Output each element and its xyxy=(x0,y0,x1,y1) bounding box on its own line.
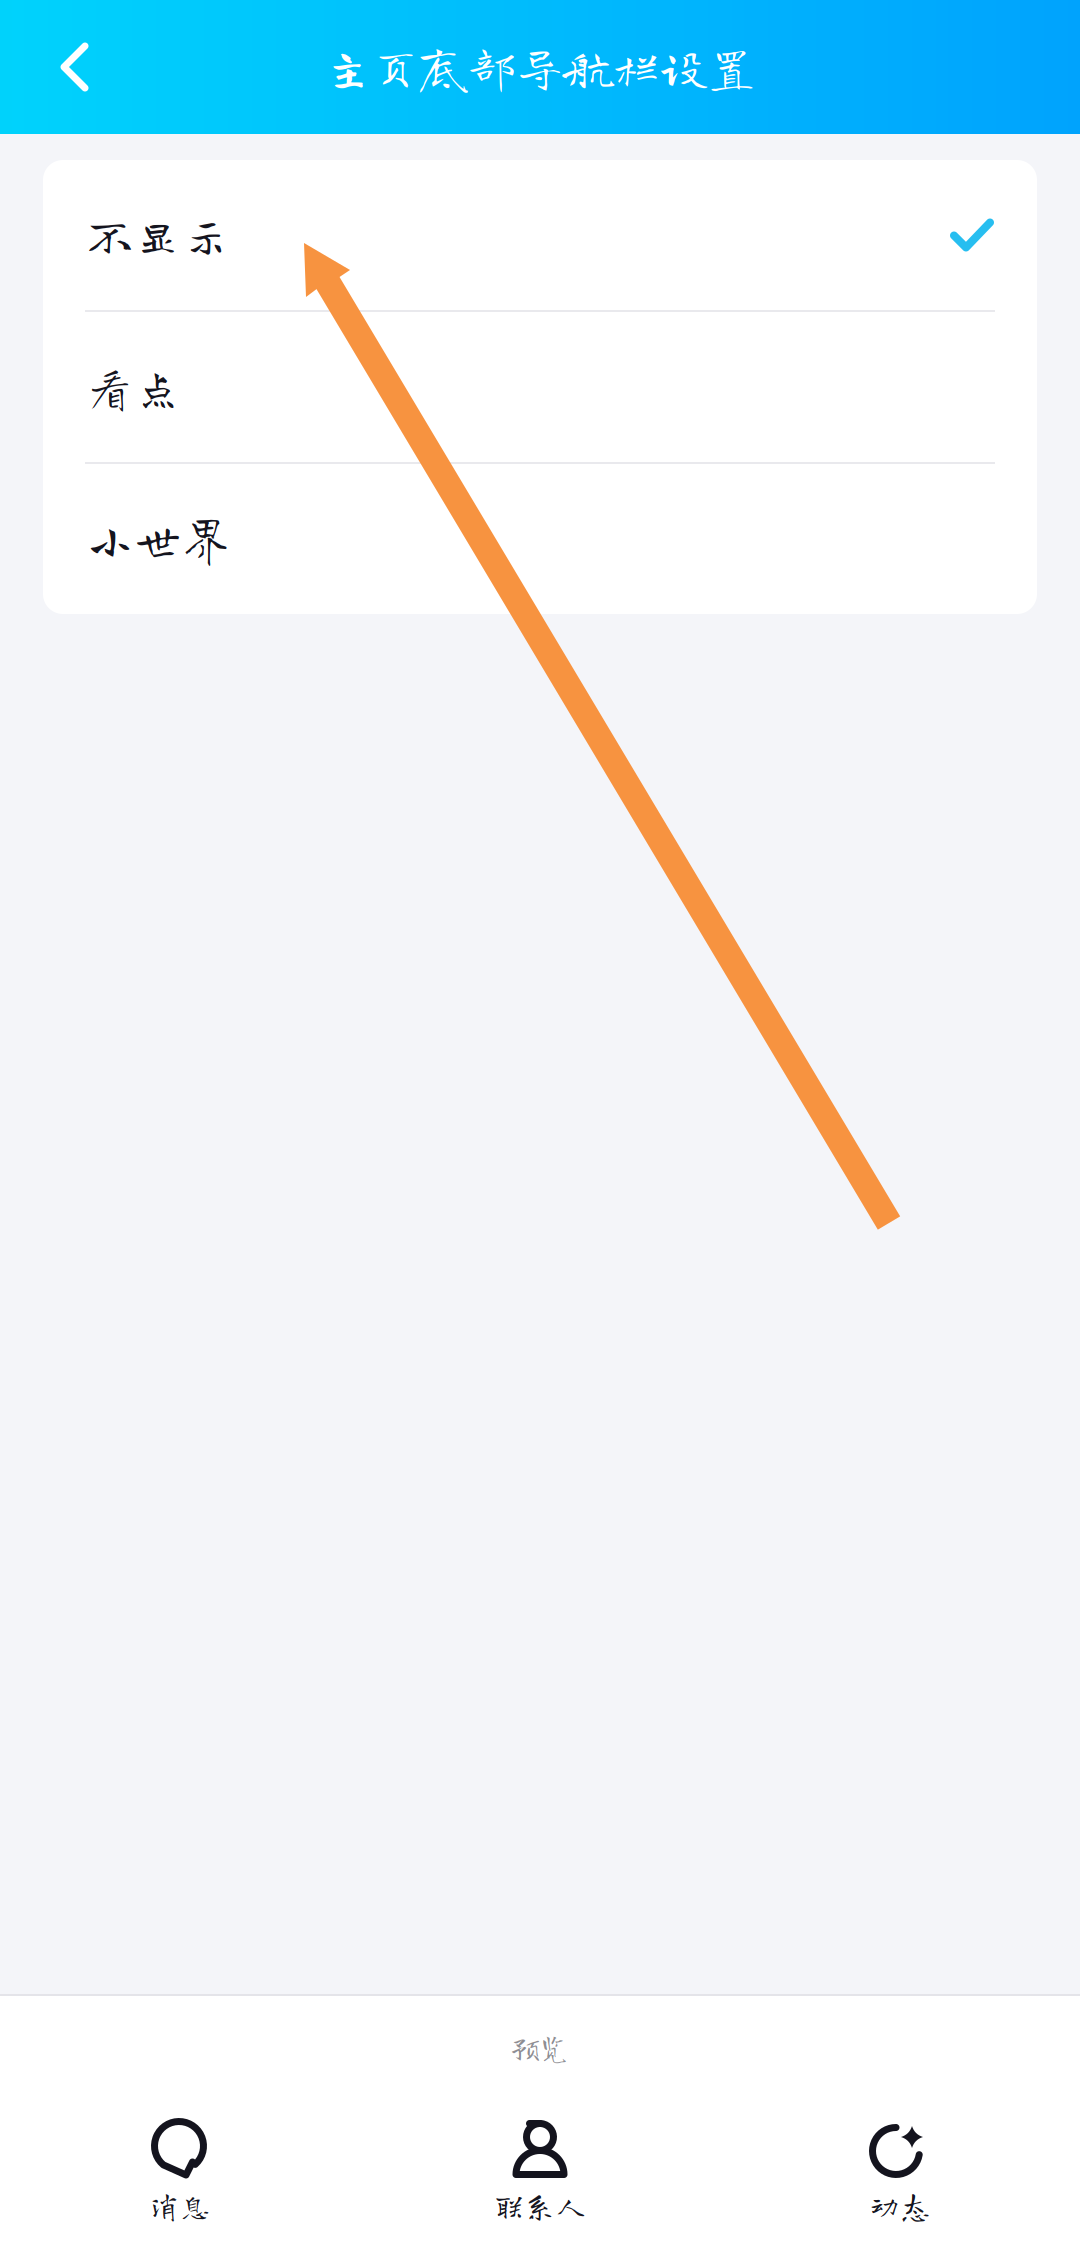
staticText: 预览 xyxy=(511,2033,569,2062)
staticText: 消息 xyxy=(149,2190,211,2221)
staticText: 动态 xyxy=(869,2190,931,2221)
staticText: 看点 xyxy=(86,363,182,411)
button[interactable]: 联系人 xyxy=(360,2120,720,2230)
button[interactable]: 小世界 xyxy=(43,464,1037,614)
staticText: 小世界 xyxy=(86,515,230,563)
button[interactable]: 看点 xyxy=(43,312,1037,462)
button[interactable]: 消息 xyxy=(0,2120,360,2230)
staticText: 主页底部导航栏设置 xyxy=(324,43,756,91)
button[interactable]: Back xyxy=(0,0,149,134)
button[interactable]: 动态 xyxy=(720,2120,1080,2230)
staticText: 联系人 xyxy=(493,2190,586,2221)
staticText: 不显示 xyxy=(86,211,230,259)
button[interactable]: 不显示 xyxy=(43,160,1037,310)
